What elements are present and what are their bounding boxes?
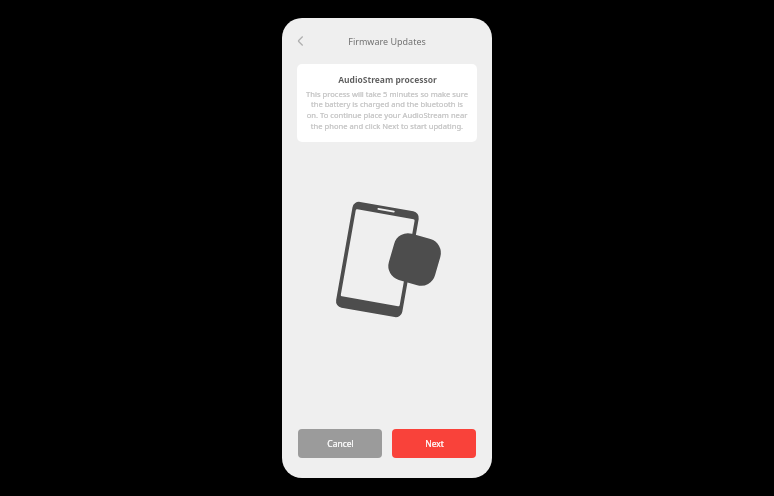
button[interactable]: Cancel (298, 429, 382, 458)
staticText: This process will take 5 minutes so make… (305, 89, 469, 132)
button[interactable]: Back (286, 26, 316, 56)
staticText: Cancel (327, 438, 354, 450)
staticText: Next (425, 438, 444, 450)
button[interactable]: Next (392, 429, 476, 458)
staticText: Firmware Updates (348, 35, 426, 47)
staticText: AudioStream processor (338, 74, 437, 86)
